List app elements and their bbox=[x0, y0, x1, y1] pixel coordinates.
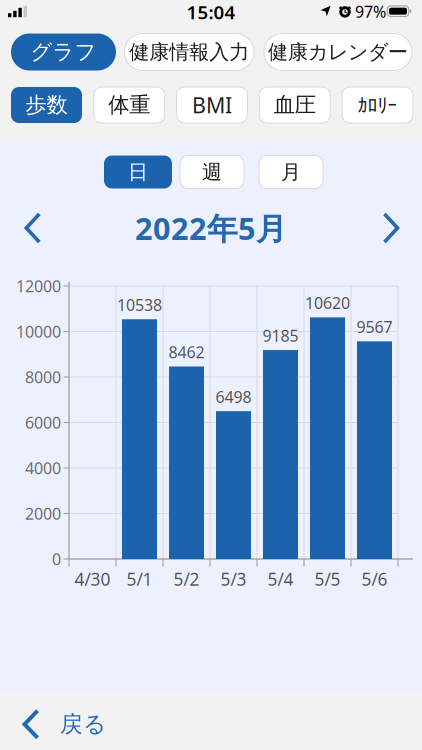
staticText: 10000 bbox=[16, 321, 61, 342]
staticText: 健康カレンダー bbox=[268, 40, 408, 64]
button[interactable]: 前の月 bbox=[17, 213, 49, 243]
staticText: 5/4 bbox=[267, 567, 293, 590]
staticText: ｶﾛﾘｰ bbox=[357, 95, 397, 115]
staticText: 12000 bbox=[16, 275, 61, 297]
staticText: 9185 bbox=[262, 325, 298, 346]
button[interactable]: ｶﾛﾘｰ bbox=[342, 87, 413, 123]
staticText: 4/30 bbox=[74, 567, 110, 590]
button[interactable]: グラフ bbox=[11, 33, 116, 70]
staticText: 戻る bbox=[60, 710, 106, 738]
staticText: 体重 bbox=[108, 92, 150, 118]
staticText: 6000 bbox=[25, 412, 61, 433]
staticText: 6498 bbox=[215, 386, 251, 407]
staticText: 5/2 bbox=[173, 567, 199, 590]
button[interactable]: 次の月 bbox=[375, 213, 407, 243]
staticText: グラフ bbox=[30, 39, 96, 65]
staticText: 8462 bbox=[168, 341, 204, 363]
button[interactable]: 週 bbox=[180, 155, 244, 188]
staticText: 血圧 bbox=[274, 92, 316, 118]
staticText: 2000 bbox=[25, 503, 61, 524]
staticText: 2022年5月 bbox=[135, 208, 287, 248]
staticText: 4000 bbox=[25, 457, 61, 479]
button[interactable]: 歩数 bbox=[11, 87, 82, 123]
staticText: 9567 bbox=[356, 316, 392, 337]
staticText: 日 bbox=[128, 160, 148, 184]
button[interactable]: 体重 bbox=[94, 87, 165, 123]
button[interactable]: 血圧 bbox=[259, 87, 330, 123]
button[interactable]: BMI bbox=[176, 87, 247, 123]
button[interactable]: 健康カレンダー bbox=[264, 33, 412, 70]
staticText: 10538 bbox=[117, 294, 162, 315]
button[interactable]: 健康情報入力 bbox=[124, 33, 254, 70]
staticText: 5/6 bbox=[361, 567, 387, 590]
staticText: 歩数 bbox=[25, 92, 67, 118]
staticText: 健康情報入力 bbox=[129, 40, 249, 64]
staticText: 月 bbox=[281, 160, 301, 184]
staticText: 5/5 bbox=[314, 567, 340, 590]
button[interactable]: 月 bbox=[259, 155, 323, 188]
staticText: BMI bbox=[192, 91, 232, 119]
staticText: 15:04 bbox=[186, 0, 235, 24]
staticText: 5/1 bbox=[126, 567, 152, 590]
staticText: 8000 bbox=[25, 366, 61, 388]
staticText: 97% bbox=[355, 1, 386, 22]
staticText: 10620 bbox=[305, 292, 350, 313]
staticText: 週 bbox=[202, 160, 222, 184]
button[interactable]: 戻る bbox=[0, 693, 422, 750]
button[interactable]: 日 bbox=[104, 155, 172, 188]
staticText: 5/3 bbox=[220, 567, 246, 590]
staticText: 0 bbox=[52, 548, 61, 570]
